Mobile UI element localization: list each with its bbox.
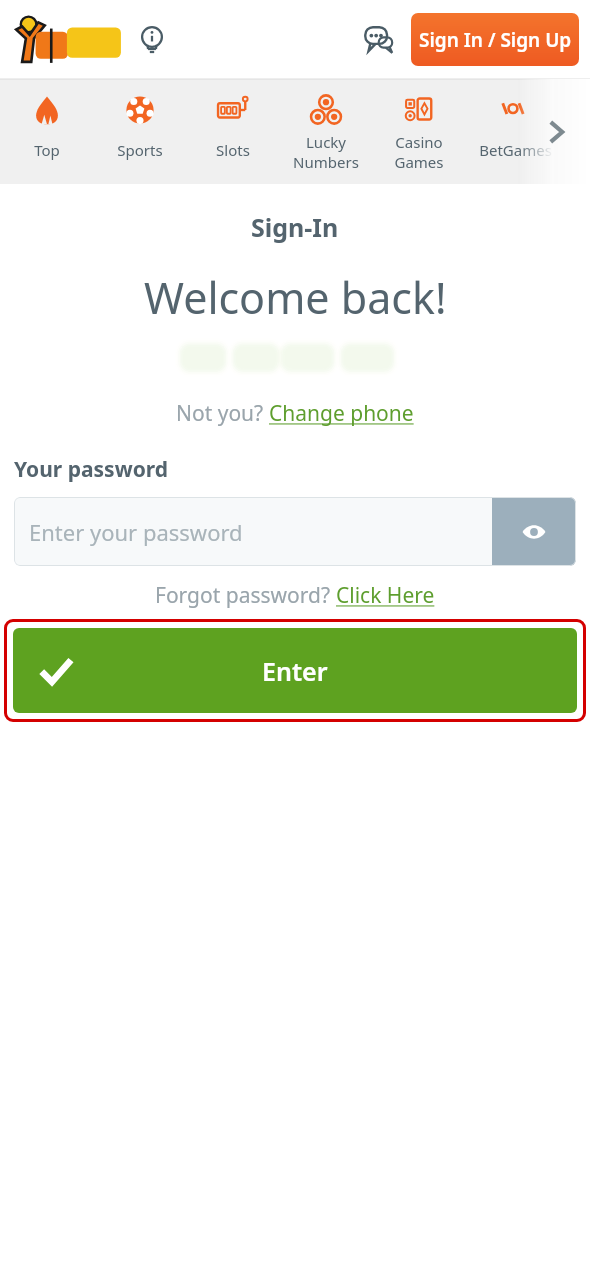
staticText: Change phone [269,399,414,428]
button[interactable]: More categories [536,112,576,152]
staticText: Sign In / Sign Up [419,27,572,53]
button[interactable]: Sports [93,79,186,184]
button[interactable]: YesPlay home [14,14,122,66]
button[interactable]: Forgot password? [155,581,435,610]
staticText: Enter [262,654,328,688]
staticText: BetGames [479,140,552,160]
button[interactable]: Casino [372,79,465,184]
staticText: Sports [117,140,163,160]
button[interactable]: Not you? [176,399,414,428]
button[interactable]: Enter [13,628,577,713]
staticText: Casino [395,132,443,152]
staticText: Lucky [306,132,346,152]
staticText: Click Here [336,581,435,610]
staticText: Welcome back! [144,268,447,327]
button[interactable]: Sign In / Sign Up [411,13,579,66]
staticText: Sign-In [251,210,339,244]
button[interactable]: Lucky [279,79,372,184]
button[interactable]: Enter your password [29,497,492,566]
staticText: Slots [216,140,250,160]
staticText: Games [394,152,444,172]
button[interactable]: Top [0,79,93,184]
staticText: Top [34,140,60,160]
button[interactable]: Slots [186,79,279,184]
staticText: Enter your password [29,517,243,547]
button[interactable]: BetGames [465,79,565,184]
staticText: Your password [14,455,168,484]
staticText: Forgot password? [155,581,336,610]
button[interactable]: Information [132,20,172,60]
button[interactable]: Chat support [358,18,402,62]
button[interactable]: Show password [492,497,576,566]
staticText: Not you? [176,399,269,428]
staticText: Numbers [293,152,359,172]
